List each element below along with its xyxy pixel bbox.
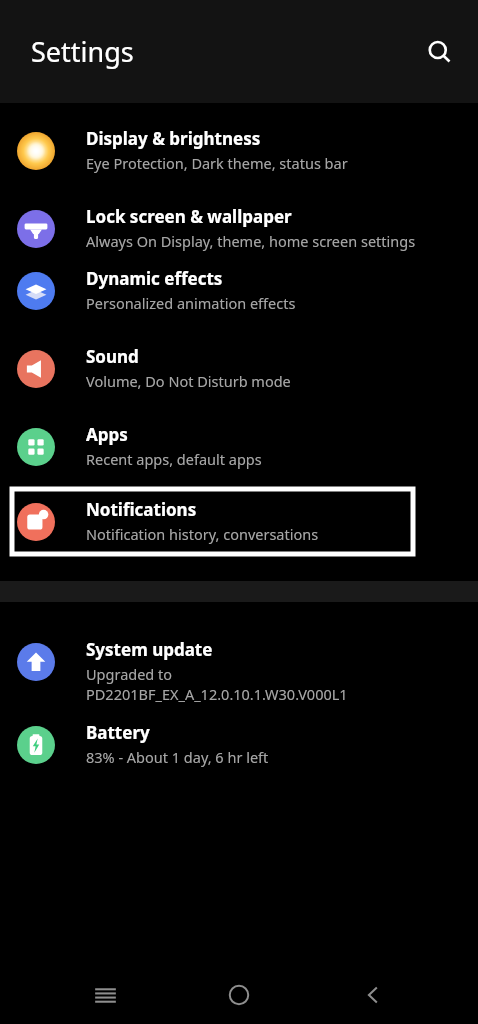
staticText: 83% - About 1 day, 6 hr left: [86, 747, 269, 767]
staticText: Personalized animation effects: [86, 293, 296, 313]
button[interactable]: Search: [416, 29, 462, 75]
button[interactable]: Lock screen & wallpaper: [0, 205, 478, 251]
staticText: Display & brightness: [86, 127, 261, 150]
button[interactable]: Dynamic effects: [0, 267, 478, 313]
staticText: Apps: [86, 423, 128, 446]
button[interactable]: Back: [344, 966, 402, 1024]
staticText: Lock screen & wallpaper: [86, 205, 292, 228]
staticText: Battery: [86, 721, 150, 744]
button[interactable]: System update: [0, 638, 478, 704]
staticText: Always On Display, theme, home screen se…: [86, 231, 416, 251]
staticText: Eye Protection, Dark theme, status bar: [86, 153, 348, 173]
staticText: Sound: [86, 345, 139, 368]
button[interactable]: Display & brightness: [0, 127, 478, 173]
staticText: Dynamic effects: [86, 267, 223, 290]
staticText: Notifications: [86, 498, 197, 521]
staticText: Settings: [31, 33, 134, 70]
button[interactable]: Battery: [0, 721, 478, 767]
button[interactable]: Notifications: [12, 489, 413, 554]
button[interactable]: Recent apps: [76, 966, 134, 1024]
staticText: System update: [86, 638, 213, 661]
staticText: Recent apps, default apps: [86, 449, 262, 469]
button[interactable]: Apps: [0, 423, 478, 469]
staticText: Upgraded to PD2201BF_EX_A_12.0.10.1.W30.…: [86, 664, 348, 704]
button[interactable]: Sound: [0, 345, 478, 391]
staticText: Notification history, conversations: [86, 524, 319, 544]
staticText: Volume, Do Not Disturb mode: [86, 371, 291, 391]
button[interactable]: Home: [210, 966, 268, 1024]
